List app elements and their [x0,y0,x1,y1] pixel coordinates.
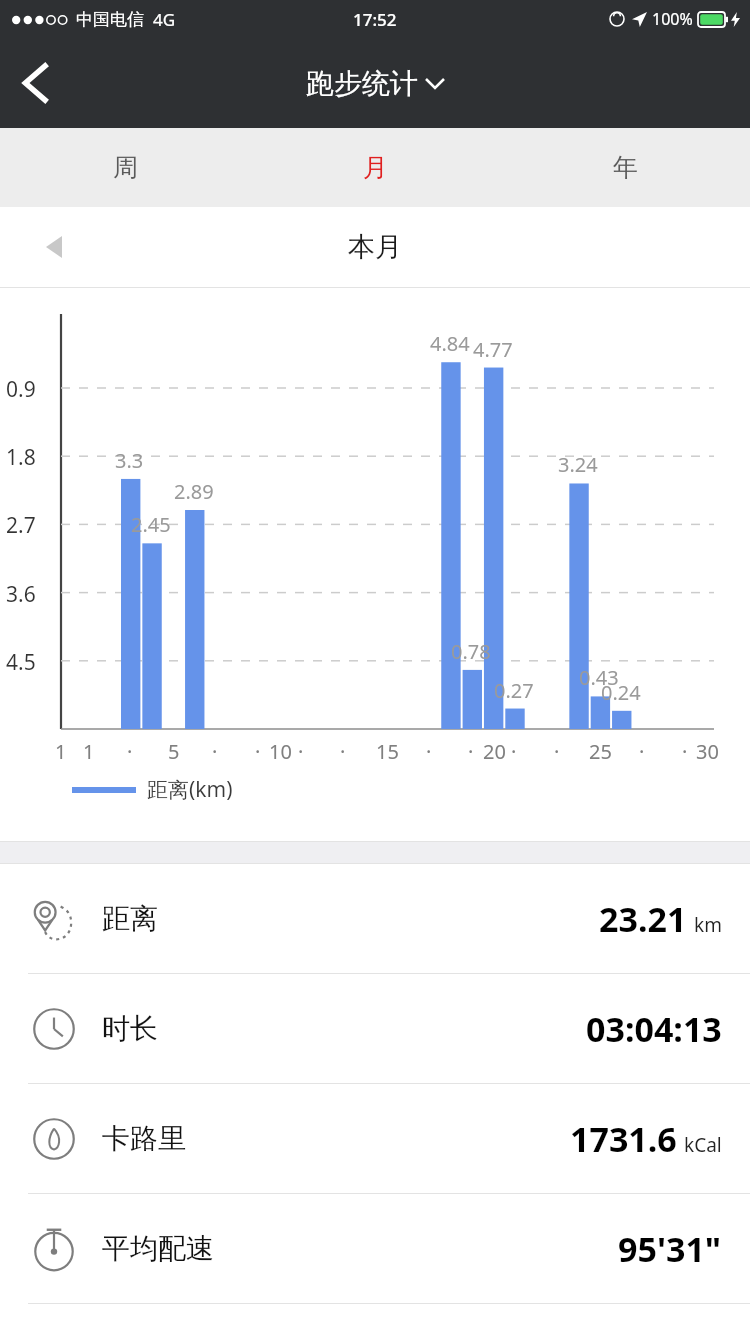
staticText: · [127,738,133,765]
staticText: · [554,738,560,765]
button[interactable]: 周 [0,128,250,207]
staticText: · [255,738,261,765]
staticText: 2.89 [174,478,214,505]
staticText: 4G [153,8,176,31]
staticText: 4.77 [473,336,513,363]
staticText: 10 [269,738,292,765]
staticText: · [426,738,432,765]
staticText: 3.24 [558,451,598,478]
staticText: 0.9 [6,375,36,404]
staticText: 20 [483,738,506,765]
staticText: 0.78 [451,638,491,665]
staticText: · [340,738,346,765]
button[interactable]: 跑步统计 [306,66,445,101]
staticText: · [298,738,304,765]
staticText: 23.21 [599,896,687,942]
staticText: 周 [113,152,138,183]
staticText: · [639,738,645,765]
button[interactable]: 年 [500,128,750,207]
button[interactable]: 距离 [0,864,750,973]
staticText: 1 [83,738,95,765]
staticText: 25 [589,738,612,765]
staticText: km [694,912,722,938]
staticText: 1731.6 [570,1116,677,1162]
staticText: 03:04:13 [586,1006,722,1052]
staticText: 距离(km) [147,775,233,804]
staticText: 15 [376,738,399,765]
staticText: 100% [652,8,693,30]
staticText: 中国电信 [76,9,144,30]
button[interactable]: 卡路里 [0,1084,750,1193]
staticText: 4.5 [6,648,36,677]
staticText: 2.45 [131,511,171,538]
staticText: · [682,738,688,765]
staticText: 0.27 [494,677,534,704]
staticText: 0.24 [601,679,641,706]
button[interactable]: Back [0,48,70,118]
staticText: 5 [168,738,180,765]
staticText: 30 [696,738,719,765]
staticText: 时长 [102,1011,158,1046]
button[interactable]: 月 [250,128,500,207]
staticText: 1 [55,738,67,765]
staticText: 跑步统计 [306,66,418,101]
button[interactable]: 平均配速 [0,1194,750,1303]
button[interactable]: 时长 [0,974,750,1083]
staticText: · [468,738,474,765]
staticText: 4.84 [430,330,470,357]
staticText: 3.6 [6,580,36,609]
staticText: 距离 [102,901,158,936]
staticText: 年 [613,152,638,183]
staticText: 1.8 [6,443,36,472]
staticText: 95'31" [618,1226,722,1272]
staticText: kCal [684,1132,722,1158]
staticText: 3.3 [115,447,144,474]
staticText: 卡路里 [102,1121,186,1156]
staticText: 本月 [348,230,402,264]
staticText: 2.7 [6,511,36,540]
staticText: · [212,738,218,765]
staticText: 月 [363,152,388,183]
staticText: 0.43 [579,664,619,691]
button[interactable]: Previous [34,227,74,267]
staticText: 17:52 [353,8,397,31]
staticText: 平均配速 [102,1231,214,1266]
staticText: · [511,738,517,765]
